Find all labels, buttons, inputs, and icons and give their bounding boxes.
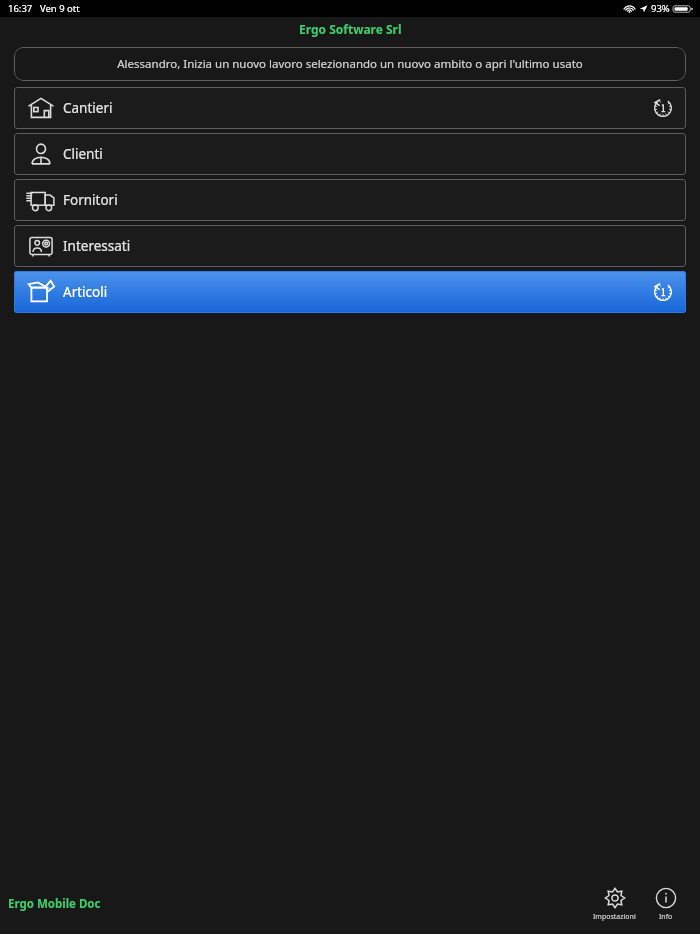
button[interactable]: Articoli — [14, 271, 686, 313]
button[interactable]: Impostazioni — [587, 884, 642, 924]
staticText: Ergo Mobile Doc — [8, 896, 101, 912]
button[interactable]: Info — [648, 884, 684, 924]
staticText: Interessati — [63, 237, 131, 255]
button[interactable]: Clienti — [14, 133, 686, 175]
staticText: Clienti — [63, 145, 103, 163]
staticText: Articoli — [63, 283, 108, 301]
staticText: Alessandro, Inizia un nuovo lavoro selez… — [117, 56, 583, 72]
staticText: 93% — [651, 2, 670, 15]
button[interactable]: Interessati — [14, 225, 686, 267]
staticText: 16:37 — [8, 2, 33, 15]
staticText: Impostazioni — [593, 912, 636, 922]
staticText: Fornitori — [63, 191, 118, 209]
button[interactable]: Fornitori — [14, 179, 686, 221]
staticText: Ergo Software Srl — [299, 21, 402, 37]
staticText: Ven 9 ott — [40, 2, 80, 15]
staticText: Info — [659, 912, 673, 922]
button[interactable]: Alessandro, Inizia un nuovo lavoro selez… — [14, 47, 686, 81]
staticText: Cantieri — [63, 99, 113, 117]
button[interactable]: Cantieri — [14, 87, 686, 129]
